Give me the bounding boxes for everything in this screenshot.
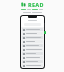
button[interactable] — [22, 48, 43, 51]
button[interactable]: Read logo — [0, 1, 64, 8]
button[interactable]: Action button — [44, 31, 46, 34]
button[interactable] — [22, 40, 43, 43]
button[interactable] — [22, 56, 43, 59]
button[interactable] — [22, 32, 43, 35]
button[interactable] — [22, 28, 43, 31]
button[interactable] — [22, 64, 43, 67]
button[interactable] — [22, 52, 43, 55]
staticText: READ — [28, 1, 44, 8]
button[interactable] — [22, 44, 43, 47]
button[interactable] — [22, 36, 43, 39]
button[interactable] — [21, 18, 44, 27]
other: Read logo — [21, 2, 26, 7]
button[interactable] — [22, 60, 43, 63]
